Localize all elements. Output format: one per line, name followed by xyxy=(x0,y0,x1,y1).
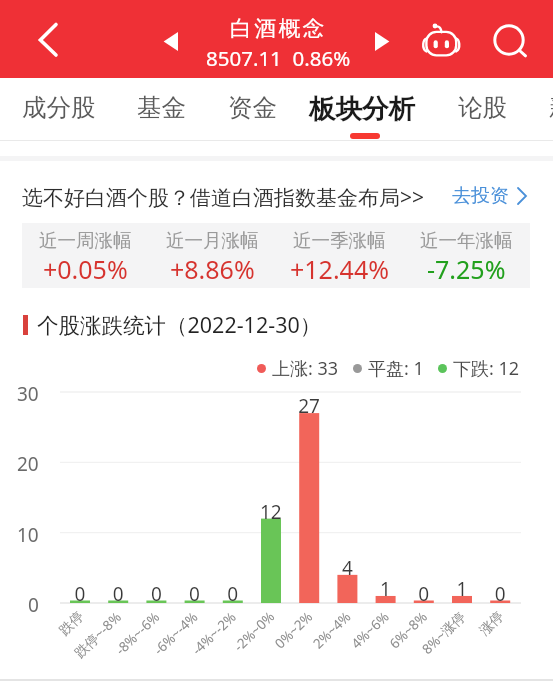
button[interactable]: 选不好白酒个股？借道白酒指数基金布局>> xyxy=(0,161,553,221)
button[interactable]: 资金 xyxy=(214,78,291,141)
button[interactable]: AI assistant xyxy=(417,16,467,66)
staticText: 下跌: 12 xyxy=(453,356,520,381)
staticText: 去投资 xyxy=(452,184,509,208)
staticText: 8507.11 0.86% xyxy=(206,44,351,72)
staticText: 新 xyxy=(549,92,553,123)
staticText: 平盘: 1 xyxy=(368,356,424,381)
button[interactable]: 成分股 xyxy=(8,78,110,141)
staticText: 个股涨跌统计（2022-12-30） xyxy=(37,310,322,339)
staticText: 选不好白酒个股？借道白酒指数基金布局>> xyxy=(22,183,425,212)
staticText: +8.86% xyxy=(170,252,255,286)
button[interactable]: 板块分析 xyxy=(295,78,429,141)
staticText: +0.05% xyxy=(43,252,128,286)
staticText: 论股 xyxy=(458,92,507,123)
staticText: 近一月涨幅 xyxy=(166,229,259,252)
button[interactable]: Search xyxy=(485,16,533,64)
staticText: 基金 xyxy=(137,92,186,123)
button[interactable]: 基金 xyxy=(123,78,200,141)
button[interactable]: Back xyxy=(18,12,72,66)
staticText: 上涨: 33 xyxy=(272,356,339,381)
button[interactable]: 新 xyxy=(535,78,553,141)
staticText: 板块分析 xyxy=(309,92,415,125)
staticText: 近一年涨幅 xyxy=(420,229,513,252)
button[interactable]: 论股 xyxy=(444,78,521,141)
staticText: 资金 xyxy=(228,92,277,123)
button[interactable]: Previous sector xyxy=(151,21,191,61)
button[interactable]: Next sector xyxy=(362,21,402,61)
staticText: 近一周涨幅 xyxy=(39,229,132,252)
staticText: +12.44% xyxy=(290,252,389,286)
staticText: 白酒概念 xyxy=(230,15,327,43)
staticText: -7.25% xyxy=(427,252,506,286)
staticText: 成分股 xyxy=(22,92,96,123)
staticText: 近一季涨幅 xyxy=(293,229,386,252)
